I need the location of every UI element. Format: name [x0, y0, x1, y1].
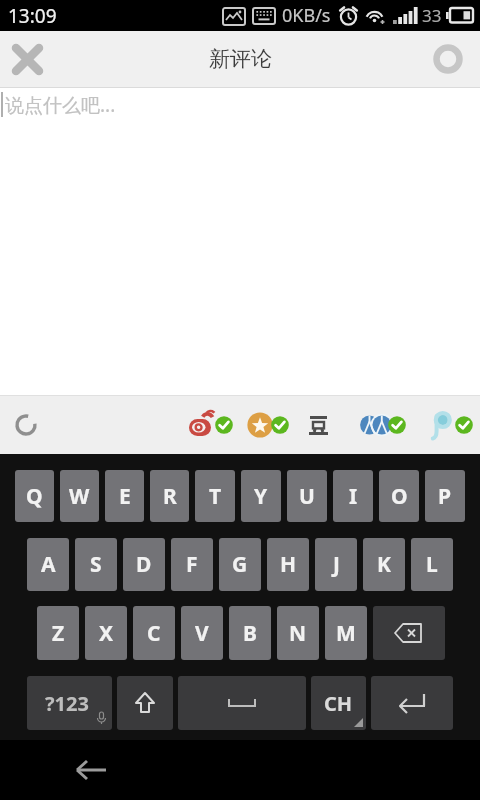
staticText: L — [426, 550, 438, 579]
staticText: I — [349, 482, 358, 511]
button[interactable] — [10, 42, 44, 76]
button[interactable]: 说点什么吧... — [0, 88, 480, 395]
staticText: CH — [324, 690, 353, 717]
staticText: A — [41, 550, 56, 579]
staticText: S — [90, 550, 102, 579]
button[interactable]: S — [75, 538, 117, 591]
button[interactable]: Z — [37, 606, 79, 660]
staticText: Q — [26, 482, 43, 511]
staticText: C — [147, 619, 161, 648]
button[interactable] — [371, 676, 453, 730]
button[interactable]: B — [229, 606, 271, 660]
button[interactable] — [189, 410, 233, 440]
staticText: Z — [52, 619, 65, 648]
staticText: N — [289, 619, 307, 648]
button[interactable]: M — [325, 606, 367, 660]
button[interactable]: Q — [15, 470, 54, 522]
staticText: J — [333, 550, 340, 579]
button[interactable]: W — [60, 470, 99, 522]
button[interactable]: E — [105, 470, 144, 522]
button[interactable]: Y — [241, 470, 281, 522]
staticText: V — [195, 619, 209, 648]
button[interactable] — [432, 43, 464, 75]
button[interactable]: A — [27, 538, 69, 591]
staticText: K — [377, 550, 391, 579]
staticText: U — [299, 482, 315, 511]
button[interactable]: J — [315, 538, 357, 591]
staticText: 0KB/s — [282, 3, 331, 28]
staticText: E — [119, 482, 131, 511]
button[interactable] — [373, 606, 445, 660]
staticText: 33 — [422, 4, 442, 27]
button[interactable]: T — [195, 470, 235, 522]
staticText: F — [186, 550, 198, 579]
button[interactable]: D — [123, 538, 165, 591]
staticText: ?123 — [45, 690, 89, 717]
button[interactable]: G — [219, 538, 261, 591]
staticText: 说点什么吧... — [5, 92, 116, 118]
staticText: X — [99, 619, 114, 648]
button[interactable]: O — [379, 470, 419, 522]
button[interactable]: ?123 — [27, 676, 112, 730]
button[interactable] — [247, 410, 289, 440]
button[interactable]: N — [277, 606, 319, 660]
staticText: T — [209, 482, 222, 511]
button[interactable]: P — [425, 470, 465, 522]
button[interactable]: V — [181, 606, 223, 660]
button[interactable]: L — [411, 538, 453, 591]
button[interactable]: K — [363, 538, 405, 591]
staticText: M — [336, 619, 356, 648]
button[interactable] — [360, 410, 406, 440]
button[interactable]: I — [333, 470, 373, 522]
button[interactable] — [117, 676, 173, 730]
staticText: Y — [254, 482, 268, 511]
staticText: O — [391, 482, 408, 511]
button[interactable] — [178, 676, 306, 730]
staticText: B — [243, 619, 257, 648]
button[interactable] — [431, 409, 473, 441]
staticText: 新评论 — [209, 46, 272, 72]
button[interactable]: X — [85, 606, 127, 660]
button[interactable]: F — [171, 538, 213, 591]
staticText: W — [69, 482, 90, 511]
button[interactable]: C — [133, 606, 175, 660]
button[interactable]: CH — [311, 676, 366, 730]
button[interactable]: R — [150, 470, 189, 522]
staticText: P — [438, 482, 452, 511]
staticText: 13:09 — [8, 3, 57, 29]
button[interactable]: U — [287, 470, 327, 522]
button[interactable]: H — [267, 538, 309, 591]
button[interactable] — [68, 746, 116, 794]
staticText: D — [136, 550, 152, 579]
staticText: R — [163, 482, 177, 511]
staticText: H — [280, 550, 297, 579]
button[interactable] — [305, 410, 331, 440]
staticText: G — [232, 550, 248, 579]
